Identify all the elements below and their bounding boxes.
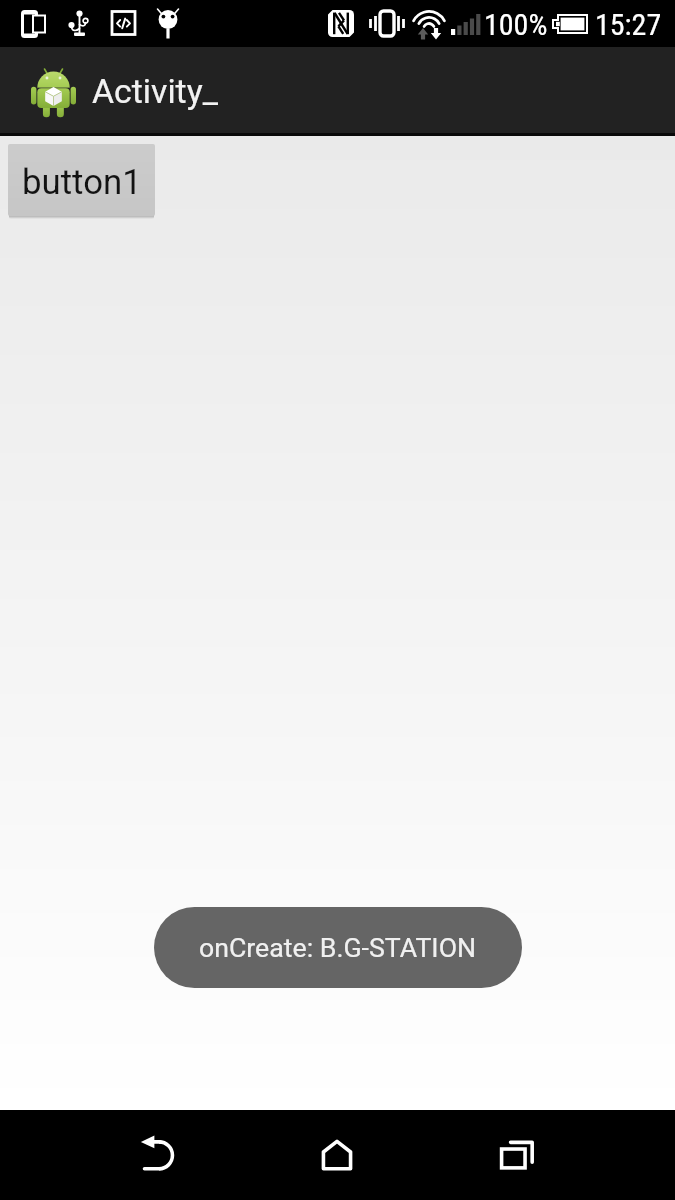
button[interactable]: Back <box>114 1110 204 1200</box>
staticText: onCreate: B.G-STATION <box>199 932 477 963</box>
button[interactable]: button1 <box>8 144 155 216</box>
button[interactable]: Recent apps <box>472 1110 562 1200</box>
staticText: Activity_ <box>92 72 218 112</box>
staticText: button1 <box>22 162 142 203</box>
staticText: 15:27 <box>595 7 662 42</box>
button[interactable]: Home <box>292 1110 382 1200</box>
staticText: 100% <box>484 7 548 42</box>
